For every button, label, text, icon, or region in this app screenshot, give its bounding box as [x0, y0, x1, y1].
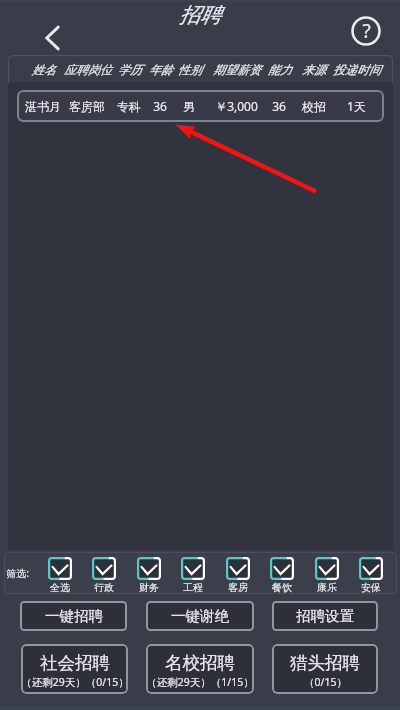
- staticText: 36: [153, 98, 167, 114]
- staticText: 工程: [183, 581, 203, 593]
- button[interactable]: 客房: [216, 555, 260, 593]
- staticText: 一键谢绝: [171, 607, 229, 625]
- staticText: 招聘: [179, 2, 221, 28]
- staticText: （还剩29天）（1/15）: [146, 675, 254, 689]
- staticText: 应聘岗位: [64, 62, 112, 77]
- staticText: 年龄: [149, 62, 173, 77]
- staticText: 男: [183, 99, 195, 114]
- staticText: 名校招聘: [165, 652, 235, 674]
- staticText: 行政: [94, 581, 114, 593]
- button[interactable]: 工程: [171, 555, 215, 593]
- staticText: 姓名: [32, 62, 56, 77]
- staticText: 餐饮: [272, 581, 292, 593]
- staticText: 一键招聘: [45, 607, 103, 625]
- button[interactable]: 行政: [82, 555, 126, 593]
- staticText: 投递时间: [333, 62, 381, 77]
- button[interactable]: 全选: [38, 555, 82, 593]
- button[interactable]: 一键招聘: [20, 601, 127, 631]
- button[interactable]: 湛书月: [17, 90, 384, 122]
- staticText: （0/15）: [304, 675, 347, 689]
- staticText: 全选: [50, 581, 70, 593]
- button[interactable]: 名校招聘: [146, 644, 254, 694]
- button[interactable]: 餐饮: [260, 555, 304, 593]
- button[interactable]: 猎头招聘: [272, 644, 378, 694]
- staticText: ￥3,000: [215, 98, 258, 114]
- staticText: 招聘设置: [296, 607, 354, 625]
- staticText: 客房: [228, 581, 248, 593]
- staticText: 学历: [118, 62, 142, 77]
- staticText: ?: [362, 18, 371, 44]
- staticText: 36: [272, 98, 286, 114]
- staticText: 期望薪资: [213, 62, 261, 77]
- button[interactable]: 财务: [127, 555, 171, 593]
- button[interactable]: 招聘设置: [272, 601, 378, 631]
- staticText: 筛选:: [6, 566, 29, 580]
- staticText: 客房部: [69, 99, 105, 114]
- staticText: （还剩29天）（0/15）: [21, 675, 128, 689]
- staticText: 湛书月: [25, 99, 61, 114]
- staticText: 专科: [117, 99, 141, 114]
- button[interactable]: Help: [348, 13, 384, 49]
- staticText: 财务: [139, 581, 159, 593]
- staticText: 能力: [268, 62, 292, 77]
- staticText: 康乐: [317, 581, 337, 593]
- staticText: 安保: [361, 581, 381, 593]
- button[interactable]: 一键谢绝: [146, 601, 254, 631]
- button[interactable]: 康乐: [305, 555, 349, 593]
- button[interactable]: Back: [37, 22, 69, 54]
- staticText: 猎头招聘: [290, 652, 360, 674]
- staticText: 来源: [302, 62, 326, 77]
- button[interactable]: 社会招聘: [21, 644, 128, 694]
- staticText: 1天: [347, 98, 366, 114]
- staticText: 社会招聘: [40, 652, 110, 674]
- button[interactable]: 安保: [349, 555, 393, 593]
- staticText: 校招: [302, 99, 326, 114]
- staticText: 性别: [178, 62, 202, 77]
